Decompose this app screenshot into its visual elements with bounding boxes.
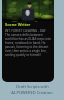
staticText: AI-POWERED Creation	[11, 90, 53, 95]
staticText: Draft Scripts with	[16, 84, 49, 89]
staticText: Scene Writer	[5, 22, 31, 27]
staticText: INT. FOREST CLEARING - DAY. The camera d…	[5, 29, 51, 57]
